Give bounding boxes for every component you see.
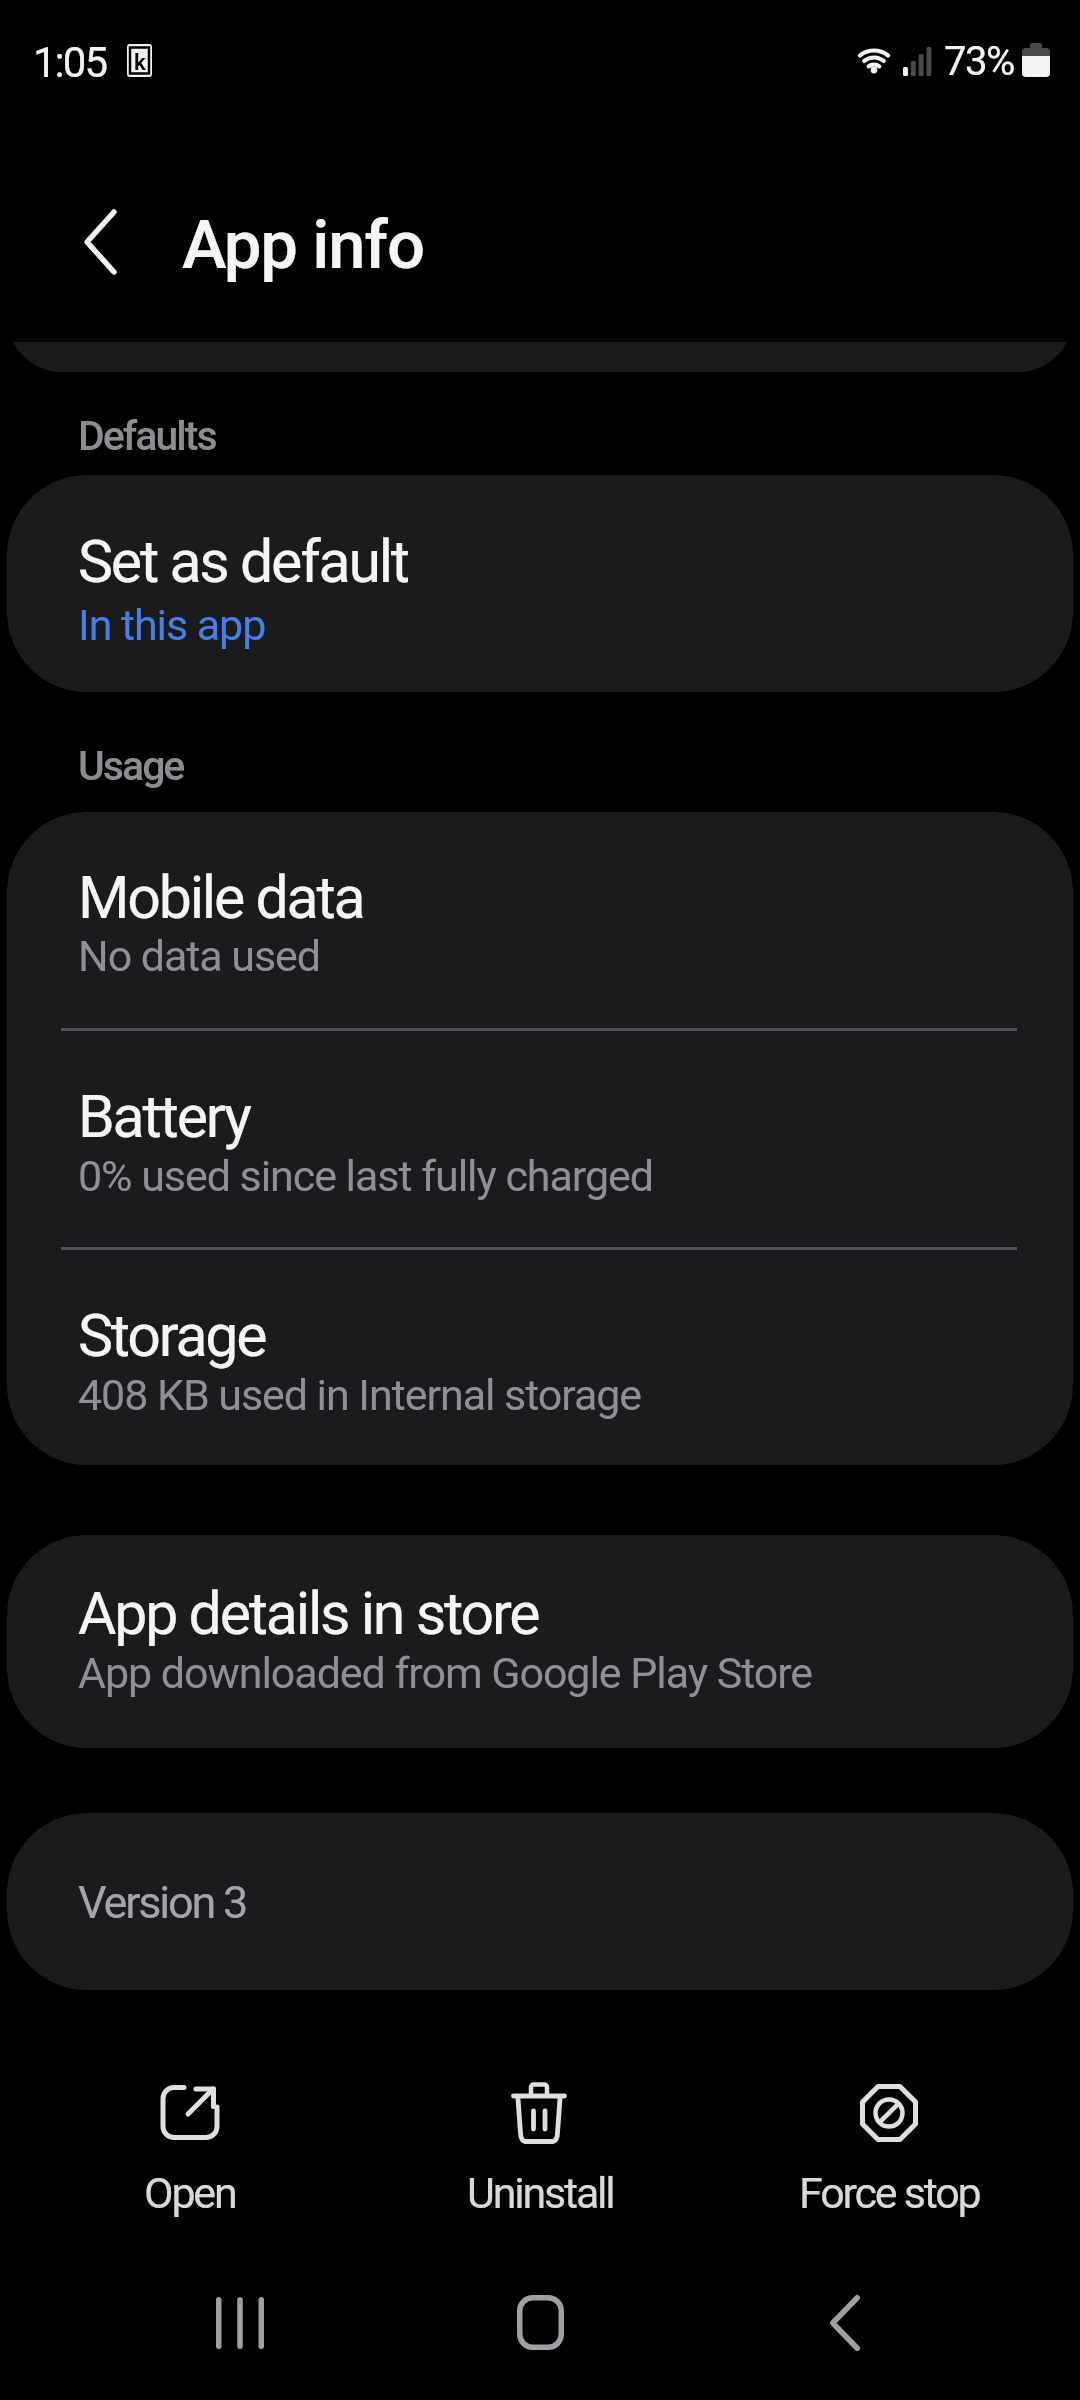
staticText: Usage	[78, 742, 184, 790]
staticText: 1:05	[33, 38, 106, 87]
button[interactable]	[155, 2260, 325, 2385]
staticText: Version 3	[78, 1876, 247, 1929]
button[interactable]	[7, 812, 1073, 1028]
button[interactable]	[455, 2260, 625, 2385]
staticText: 73%	[944, 38, 1014, 85]
staticText: Storage	[78, 1301, 266, 1370]
button[interactable]	[760, 2260, 930, 2385]
staticText: 0% used since last fully charged	[78, 1151, 654, 1201]
button[interactable]	[7, 475, 1073, 692]
button[interactable]	[7, 1249, 1073, 1465]
staticText: Open	[144, 2168, 236, 2218]
staticText: App details in store	[78, 1579, 539, 1648]
staticText: Set as default	[78, 527, 408, 596]
button[interactable]	[7, 1030, 1073, 1246]
staticText: Defaults	[78, 412, 216, 460]
button[interactable]	[90, 2060, 290, 2230]
staticText: Battery	[78, 1082, 250, 1151]
staticText: Uninstall	[467, 2168, 614, 2218]
staticText: In this app	[78, 600, 266, 650]
staticText: No data used	[78, 931, 320, 981]
button[interactable]	[7, 1535, 1073, 1748]
staticText: Mobile data	[78, 863, 364, 932]
button[interactable]	[54, 196, 146, 288]
staticText: App info	[182, 206, 424, 285]
staticText: 408 KB used in Internal storage	[78, 1370, 642, 1420]
button[interactable]	[440, 2060, 640, 2230]
staticText: App downloaded from Google Play Store	[78, 1648, 813, 1698]
button[interactable]	[790, 2060, 990, 2230]
staticText: Force stop	[799, 2168, 980, 2218]
staticText: k	[134, 50, 146, 76]
